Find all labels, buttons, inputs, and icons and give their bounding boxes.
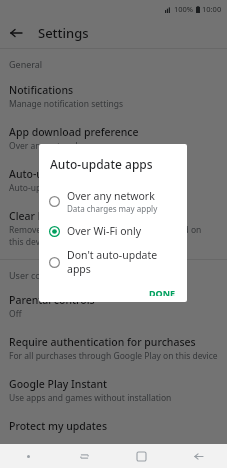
button[interactable]: Notifications: [0, 70, 227, 110]
staticText: Protect my updates: [9, 419, 107, 433]
button[interactable]: Don't auto-update apps: [39, 243, 187, 281]
button[interactable]: App download preference: [0, 110, 227, 152]
staticText: Auto-update apps: [9, 167, 99, 181]
button[interactable]: Require authentication for purchases: [0, 320, 227, 362]
staticText: Over Wi-Fi only: [67, 224, 142, 238]
staticText: App download preference: [9, 125, 139, 139]
button[interactable]: DONE: [138, 281, 187, 302]
staticText: DONE: [149, 287, 176, 296]
button[interactable]: Back: [0, 17, 31, 48]
staticText: Auto-update apps over Wi-Fi only: [9, 182, 142, 194]
staticText: 10:00: [202, 4, 222, 14]
staticText: Manage notification settings: [9, 98, 123, 110]
staticText: Use apps and games without installation: [9, 392, 172, 404]
staticText: General: [9, 58, 43, 70]
staticText: Over any network: [67, 189, 155, 203]
button[interactable]: Protect my updates: [0, 404, 227, 433]
button[interactable]: Back: [170, 444, 227, 468]
button[interactable]: Auto-update apps: [0, 152, 227, 194]
staticText: Notifications: [9, 83, 74, 97]
staticText: Require authentication for purchases: [9, 335, 196, 349]
button[interactable]: Parental controls: [0, 281, 227, 320]
staticText: Off: [9, 308, 22, 320]
staticText: Remove all the searches you have perform…: [9, 224, 218, 248]
button[interactable]: Menu: [0, 444, 56, 468]
button[interactable]: Home: [113, 444, 170, 468]
staticText: Don't auto-update apps: [67, 248, 179, 276]
button[interactable]: Over any network: [39, 184, 187, 219]
button[interactable]: Google Play Instant: [0, 362, 227, 404]
staticText: Auto-update apps: [50, 156, 153, 172]
staticText: User controls: [9, 269, 66, 281]
staticText: For all purchases through Google Play on…: [9, 350, 218, 362]
staticText: 100%: [174, 4, 194, 14]
staticText: Clear local search history: [9, 209, 135, 223]
staticText: Parental controls: [9, 293, 95, 307]
staticText: Google Play Instant: [9, 377, 108, 391]
button[interactable]: Recents: [56, 444, 113, 468]
button[interactable]: Over Wi-Fi only: [39, 219, 187, 243]
staticText: Over any network: [9, 140, 81, 152]
staticText: Data charges may apply: [67, 203, 158, 214]
button[interactable]: Clear local search history: [0, 194, 227, 248]
staticText: Settings: [38, 24, 89, 42]
